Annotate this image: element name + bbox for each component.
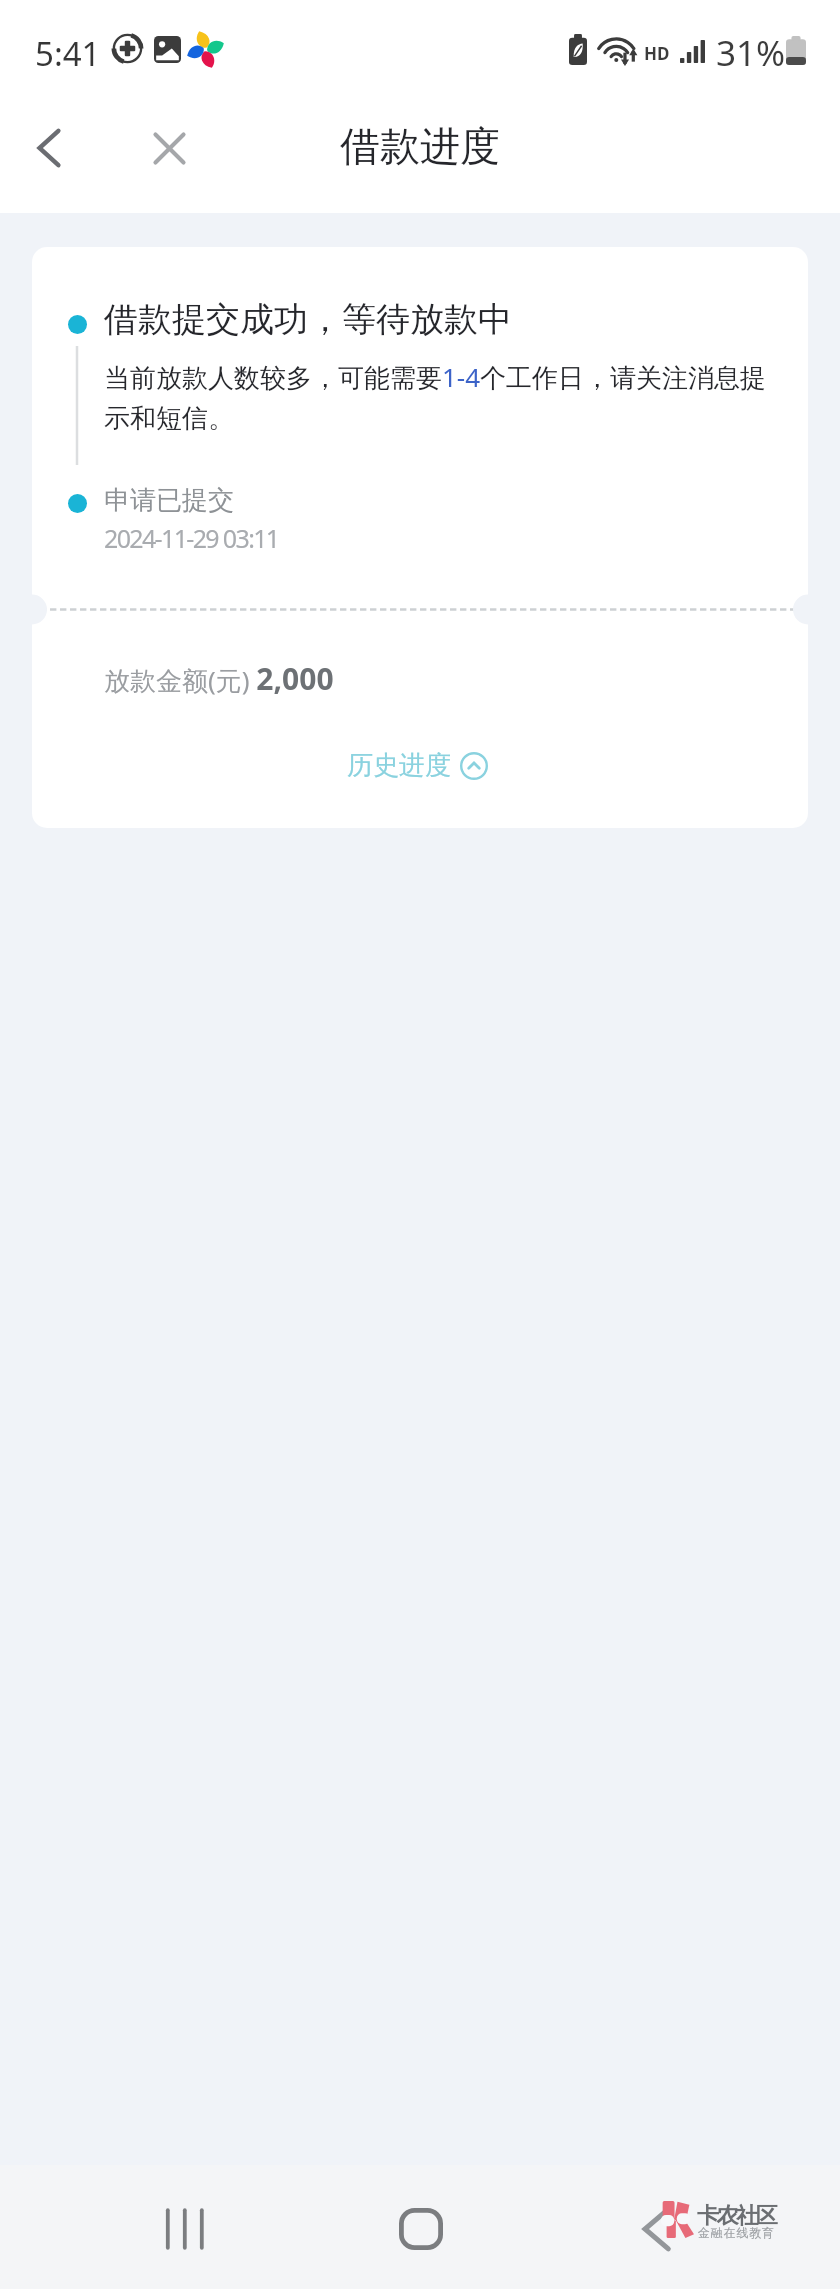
staticText: HD <box>644 42 670 65</box>
button[interactable]: 历史进度 <box>333 737 502 794</box>
staticText: 历史进度 <box>347 749 451 782</box>
staticText: 31% <box>716 29 786 77</box>
staticText: 申请已提交 <box>104 484 234 517</box>
staticText: 5:41 <box>35 31 101 76</box>
staticText: 当前放款人数较多，可能需要1-4个工作日，请关注消息提示和短信。 <box>104 359 772 435</box>
staticText: 放款金额(元) 2,000 <box>104 658 334 699</box>
staticText: 借款提交成功，等待放款中 <box>104 298 512 341</box>
staticText: 借款进度 <box>340 121 500 171</box>
button[interactable]: Close <box>127 106 211 190</box>
button[interactable]: Back <box>616 2189 696 2269</box>
button[interactable]: Recent apps <box>145 2189 225 2269</box>
staticText: 2024-11-29 03:11 <box>104 521 279 555</box>
button[interactable]: Back <box>8 106 92 190</box>
button[interactable]: Home <box>381 2189 461 2269</box>
staticText: 卡农社区 <box>697 2202 776 2230</box>
staticText: 金融在线教育 <box>698 2225 775 2240</box>
